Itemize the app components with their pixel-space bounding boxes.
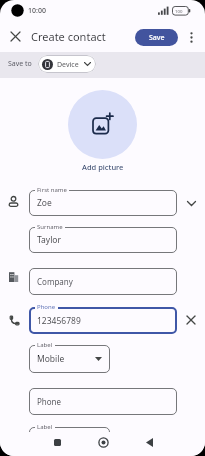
staticText: Surname [37,223,63,231]
button[interactable] [48,432,66,452]
staticText: Phone [37,303,56,311]
staticText: 123456789 [37,315,81,327]
button[interactable]: Taylor [29,227,177,253]
staticText: Save [149,33,165,43]
button[interactable] [68,90,137,159]
button[interactable] [29,427,110,455]
button[interactable]: Mobile [29,345,110,373]
staticText: 100 [175,8,183,14]
button[interactable] [94,432,112,452]
button[interactable] [6,27,24,45]
button[interactable]: 123456789 [29,307,177,334]
button[interactable]: Company [29,268,177,295]
button[interactable]: Device [38,55,96,73]
button[interactable] [184,28,198,46]
staticText: Label [37,423,53,431]
staticText: First name [37,186,67,194]
staticText: Company [37,276,73,287]
staticText: Mobile [37,353,65,365]
button[interactable]: Zoe [29,190,177,216]
staticText: Device [57,60,79,70]
staticText: Add picture [82,162,124,172]
button[interactable]: Phone [29,388,177,415]
button[interactable] [140,432,158,452]
staticText: Label [37,341,53,349]
staticText: Phone [37,396,62,407]
staticText: Save to [8,59,32,69]
staticText: Create contact [31,29,106,44]
staticText: 10:00 [28,6,46,16]
button[interactable] [182,311,200,329]
staticText: Zoe [37,197,52,209]
button[interactable]: Save [135,29,178,46]
staticText: Taylor [37,234,61,246]
button[interactable] [182,194,200,212]
